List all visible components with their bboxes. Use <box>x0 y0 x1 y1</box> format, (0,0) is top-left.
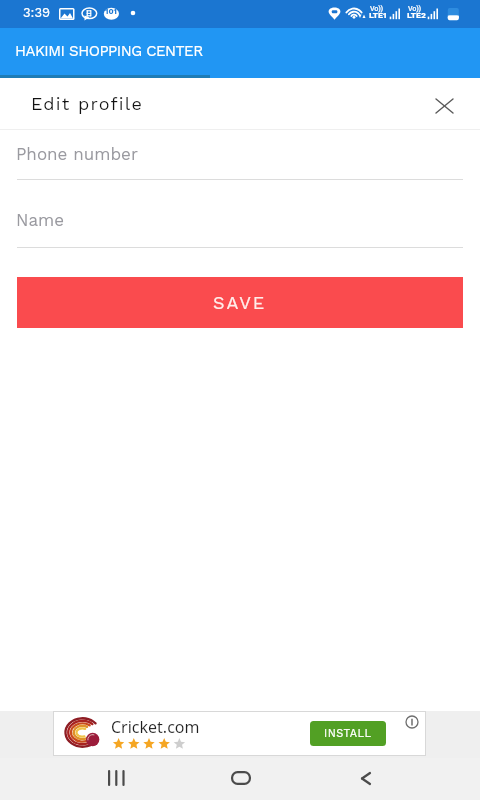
staticText: LTE2 <box>407 11 426 20</box>
staticText: Name <box>16 210 65 230</box>
staticText: HAKIMI SHOPPING CENTER <box>15 42 203 60</box>
staticText: SAVE <box>213 292 267 313</box>
staticText: INSTALL <box>324 727 372 740</box>
button[interactable]: Close <box>426 88 462 124</box>
button[interactable]: SAVE <box>17 277 463 328</box>
button[interactable]: Recents <box>94 757 138 799</box>
staticText: 101 <box>105 7 118 16</box>
button[interactable]: INSTALL <box>310 721 386 746</box>
staticText: LTE1 <box>369 11 387 20</box>
staticText: Vo)) <box>408 4 422 12</box>
button[interactable]: Cricket.com <box>53 711 426 756</box>
staticText: Cricket.com <box>111 716 200 738</box>
button[interactable]: Back <box>344 757 388 799</box>
button[interactable]: Ad info <box>405 715 419 729</box>
staticText: Phone number <box>16 144 138 164</box>
staticText: Vo)) <box>370 4 384 12</box>
staticText: 3:39 <box>23 5 51 20</box>
button[interactable]: Home <box>219 757 263 799</box>
staticText: Edit profile <box>31 93 144 114</box>
